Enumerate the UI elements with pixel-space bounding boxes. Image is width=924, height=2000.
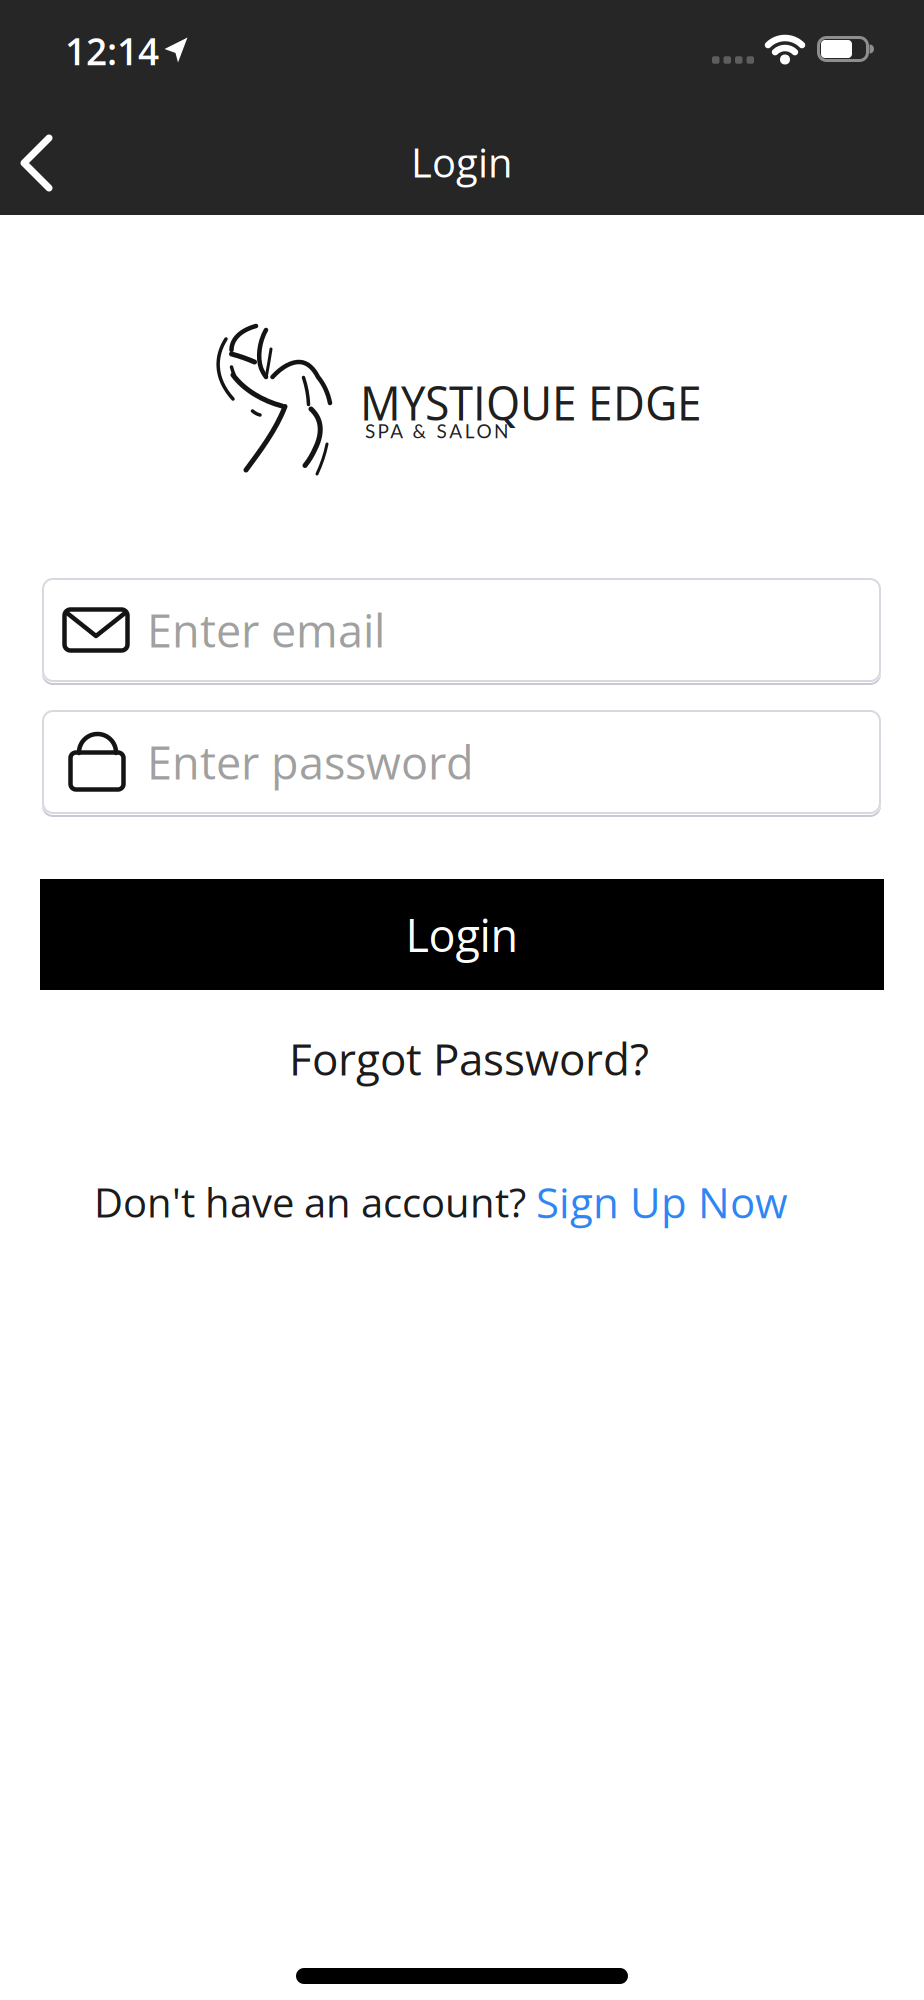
staticText: Forgot Password? — [289, 1028, 649, 1088]
staticText: MYSTIQUE EDGE — [360, 369, 702, 435]
button[interactable]: Enter password — [42, 710, 881, 814]
staticText: 12:14 — [65, 26, 159, 76]
staticText: Login — [405, 904, 518, 965]
button[interactable]: Enter email — [42, 578, 881, 682]
button[interactable]: Forgot Password? — [289, 1028, 649, 1088]
staticText: Don't have an account? — [94, 1175, 526, 1229]
button[interactable] — [2, 118, 72, 208]
staticText: SPA & SALON — [365, 420, 509, 442]
staticText: Sign Up Now — [536, 1173, 788, 1231]
staticText: Login — [411, 135, 513, 189]
staticText: Enter password — [147, 731, 474, 793]
button[interactable]: Sign Up Now — [536, 1173, 788, 1231]
staticText: Enter email — [147, 599, 385, 661]
button[interactable]: Login — [40, 879, 884, 990]
